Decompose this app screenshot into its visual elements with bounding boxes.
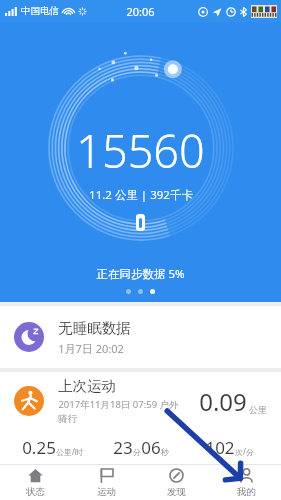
staticText: 23 (113, 436, 133, 459)
button[interactable]: Discover (141, 465, 211, 500)
staticText: 次/分 (235, 446, 254, 457)
staticText: 骑行 (58, 413, 77, 425)
staticText: 0.25 (22, 436, 56, 459)
staticText: 无睡眠数据 (58, 319, 131, 337)
staticText: 我的 (237, 486, 256, 498)
button[interactable]: 无睡眠数据 (0, 306, 281, 368)
staticText: 运动 (97, 486, 116, 498)
staticText: 15560 (76, 120, 205, 181)
staticText: 上次运动 (58, 377, 116, 395)
staticText: 0.09 (199, 385, 247, 418)
staticText: 06 (141, 436, 161, 459)
button[interactable]: Sports (71, 465, 141, 500)
button[interactable]: Profile (211, 465, 281, 500)
staticText: 状态 (26, 486, 45, 498)
staticText: 中国电信 (21, 5, 59, 17)
staticText: 秒 (161, 447, 169, 457)
staticText: 正在同步数据 5% (96, 266, 185, 282)
button[interactable]: 上次运动 (0, 372, 281, 465)
staticText: 发现 (167, 486, 186, 498)
staticText: 102 (205, 436, 235, 459)
staticText: 公里 (249, 404, 267, 415)
staticText: 公里/时 (56, 446, 83, 457)
staticText: 1月7日 20:02 (58, 341, 124, 356)
button[interactable]: Status (0, 465, 71, 500)
staticText: 分 (133, 447, 141, 457)
staticText: 20:06 (126, 4, 155, 19)
staticText: 2017年11月18日 07:59 户外 (58, 398, 179, 411)
staticText: 11.2 公里 | 392千卡 (89, 187, 193, 203)
